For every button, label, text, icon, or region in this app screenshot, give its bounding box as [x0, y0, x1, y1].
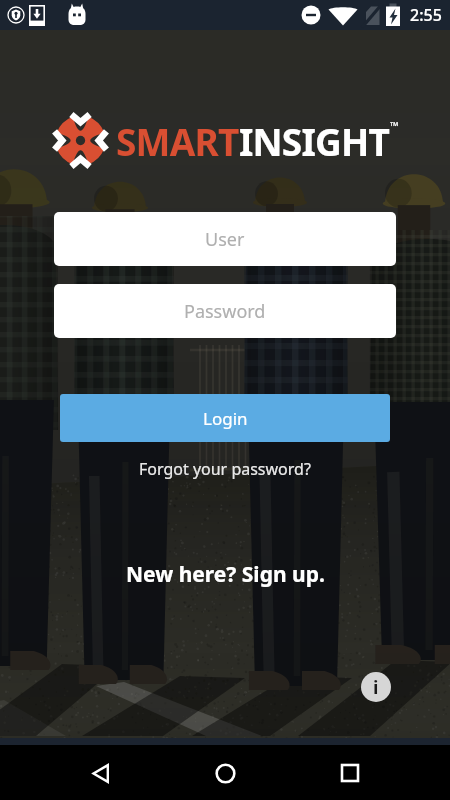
staticText: 2:55 [410, 4, 442, 26]
button[interactable]: Recents [326, 749, 374, 797]
button[interactable]: Password [54, 284, 396, 338]
staticText: New here? Sign up. [126, 560, 325, 589]
button[interactable]: New here? Sign up. [120, 554, 331, 595]
staticText: User [205, 227, 245, 252]
button[interactable]: Forgot your password? [133, 452, 317, 486]
staticText: Login [203, 407, 248, 430]
button[interactable]: User [54, 212, 396, 266]
staticText: INSIGHT [239, 116, 390, 166]
button[interactable]: Back [77, 749, 125, 797]
staticText: Forgot your password? [139, 458, 311, 480]
staticText: i [373, 675, 379, 700]
button[interactable]: Login [60, 394, 390, 442]
staticText: ™ [390, 118, 399, 133]
staticText: SMART [116, 116, 239, 166]
button[interactable]: Home [201, 749, 249, 797]
button[interactable]: Info [361, 672, 391, 702]
staticText: Password [184, 299, 266, 324]
